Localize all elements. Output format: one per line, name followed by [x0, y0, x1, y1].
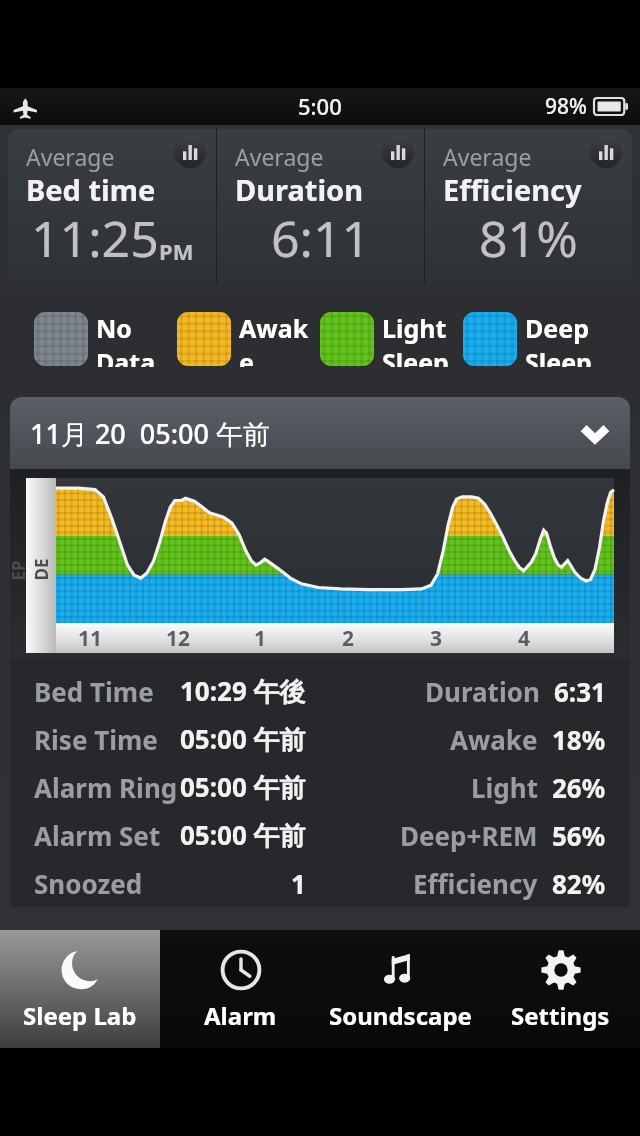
- staticText: 05:00 午前: [180, 721, 306, 757]
- button[interactable]: Bed Time: [16, 667, 624, 715]
- staticText: Deep+REM: [400, 818, 538, 853]
- staticText: 11: [78, 624, 103, 653]
- button[interactable]: Awake: [177, 311, 320, 367]
- staticText: Snoozed: [34, 866, 143, 901]
- button[interactable]: Rise Time: [16, 715, 624, 763]
- button[interactable]: Light: [320, 311, 463, 367]
- staticText: PM: [159, 236, 194, 266]
- staticText: Alarm Set: [34, 818, 161, 853]
- button[interactable]: Alarm Set: [16, 811, 624, 859]
- button[interactable]: Sleep Lab: [0, 930, 160, 1048]
- button[interactable]: Bed time chart: [174, 136, 206, 168]
- button[interactable]: Alarm: [160, 930, 320, 1048]
- staticText: Average: [443, 141, 532, 172]
- button[interactable]: Average: [8, 129, 216, 284]
- button[interactable]: Efficiency chart: [590, 136, 622, 168]
- staticText: 11:25: [31, 204, 159, 272]
- staticText: Light: [382, 311, 447, 345]
- button[interactable]: Settings: [480, 930, 640, 1048]
- staticText: 1: [291, 866, 306, 901]
- staticText: 11月 20 05:00 午前: [30, 415, 270, 452]
- staticText: Data: [96, 345, 156, 367]
- staticText: 6:31: [554, 674, 606, 709]
- button[interactable]: Alarm Ring: [16, 763, 624, 811]
- staticText: 10:29 午後: [180, 673, 306, 709]
- staticText: 4: [518, 624, 531, 653]
- staticText: 26%: [552, 770, 606, 805]
- staticText: SLEEP DEPTH: [10, 550, 98, 580]
- staticText: Bed Time: [34, 674, 154, 709]
- staticText: 81%: [479, 204, 578, 272]
- staticText: Sleep: [525, 345, 592, 367]
- staticText: Sleep: [382, 345, 449, 367]
- staticText: Rise Time: [34, 722, 158, 757]
- button[interactable]: Average: [217, 129, 424, 284]
- staticText: 1: [254, 624, 267, 653]
- staticText: 2: [342, 624, 355, 653]
- staticText: 05:00 午前: [180, 817, 306, 853]
- staticText: Light: [471, 770, 538, 805]
- staticText: 5:00: [298, 91, 342, 121]
- staticText: 18%: [552, 722, 606, 757]
- staticText: Alarm: [204, 999, 277, 1032]
- button[interactable]: Soundscape: [320, 930, 480, 1048]
- staticText: Deep: [525, 311, 589, 345]
- staticText: Average: [26, 141, 115, 172]
- button[interactable]: Deep: [463, 311, 606, 367]
- staticText: 12: [166, 624, 191, 653]
- button[interactable]: Duration chart: [382, 136, 414, 168]
- staticText: Settings: [511, 999, 610, 1032]
- staticText: 05:00 午前: [180, 769, 306, 805]
- staticText: Duration: [425, 674, 540, 709]
- staticText: Average: [235, 141, 324, 172]
- staticText: Alarm Ring: [34, 770, 178, 805]
- staticText: No: [96, 311, 132, 345]
- staticText: 56%: [552, 818, 606, 853]
- staticText: Awake: [239, 311, 320, 367]
- button[interactable]: 11月 20 05:00 午前: [10, 397, 630, 469]
- staticText: Sleep Lab: [23, 999, 137, 1032]
- staticText: Soundscape: [329, 999, 472, 1032]
- staticText: 82%: [552, 866, 606, 901]
- staticText: 3: [430, 624, 443, 653]
- staticText: Efficiency: [413, 866, 538, 901]
- staticText: 98%: [545, 92, 587, 121]
- staticText: 6:11: [271, 204, 371, 272]
- staticText: Bed time: [26, 170, 156, 209]
- button[interactable]: Average: [425, 129, 632, 284]
- button[interactable]: No: [34, 311, 177, 367]
- staticText: Awake: [450, 722, 538, 757]
- other: Expand: [580, 418, 610, 448]
- staticText: Efficiency: [443, 170, 582, 209]
- button[interactable]: Snoozed: [16, 859, 624, 907]
- staticText: Duration: [235, 170, 364, 209]
